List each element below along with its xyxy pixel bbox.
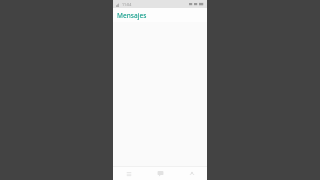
staticText: Mensajes <box>117 11 147 20</box>
button[interactable]: Chats <box>113 167 145 180</box>
button[interactable]: Mensajes <box>113 8 207 22</box>
staticText: 11:04 <box>122 2 132 7</box>
button[interactable]: Mensajes <box>145 167 176 180</box>
